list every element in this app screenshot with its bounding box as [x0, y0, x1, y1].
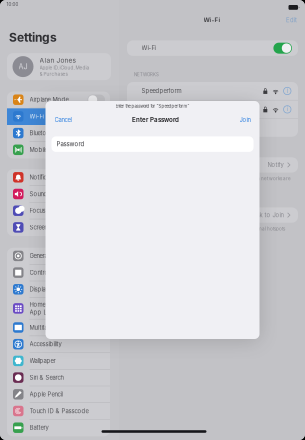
staticText: Touch ID & Passcode	[29, 407, 88, 415]
button[interactable]: Touch ID & Passcode	[7, 403, 110, 420]
staticText: Notify	[267, 161, 283, 168]
staticText: Cancel	[54, 116, 71, 123]
button[interactable]: Wallpaper	[7, 353, 110, 369]
button[interactable]: Apple Pencil	[7, 386, 110, 403]
staticText: Airplane Mode	[29, 96, 68, 103]
staticText: Sounds	[29, 190, 50, 198]
staticText: Notifications	[29, 174, 62, 181]
staticText: Enter the password for “Speedperform”	[115, 104, 189, 109]
staticText: Multitasking	[29, 324, 61, 331]
staticText: NETWORKS	[134, 72, 159, 77]
staticText: Focus	[29, 207, 45, 214]
staticText: Screen Time	[29, 224, 62, 231]
button[interactable]: Airplane Mode	[7, 92, 110, 108]
button[interactable]: Notifications	[7, 169, 110, 186]
staticText: Control Centre	[29, 269, 68, 276]
button[interactable]: Speedperform	[127, 82, 298, 100]
staticText: i	[287, 106, 288, 113]
button[interactable]: Cancel	[52, 113, 73, 126]
staticText: Known networks will be joined automatica…	[134, 176, 291, 187]
staticText: Allow this device to automatically disco…	[134, 226, 285, 237]
staticText: Siri & Search	[29, 374, 63, 381]
staticText: Alan Jones	[39, 56, 75, 64]
staticText: Mobile Data	[29, 146, 61, 153]
button[interactable]: Display & Brightness	[7, 281, 110, 298]
button[interactable]: Hotspot-5G	[127, 100, 298, 118]
staticText: Battery	[29, 424, 48, 431]
staticText: Accessibility	[29, 341, 61, 348]
staticText: i	[287, 88, 288, 94]
button[interactable]: Wi-Fi	[7, 108, 110, 125]
button[interactable]: Password	[51, 136, 253, 152]
button[interactable]: Siri & Search	[7, 369, 110, 386]
staticText: Speedperform	[141, 87, 181, 94]
button[interactable]: Battery	[7, 420, 110, 436]
button[interactable]: Ask to Join Networks	[127, 157, 298, 172]
staticText: Apple Pencil	[29, 391, 62, 398]
button[interactable]: Sounds	[7, 186, 110, 203]
staticText: Settings	[9, 30, 57, 45]
button[interactable]: Focus	[7, 203, 110, 219]
button[interactable]: Control Centre	[7, 264, 110, 281]
button[interactable]: Wi-Fi	[273, 43, 292, 54]
staticText: Wallpaper	[29, 357, 55, 364]
staticText: 10:00	[6, 2, 18, 7]
staticText: Edit	[286, 17, 297, 24]
staticText: Home Screen &	[29, 301, 71, 308]
staticText: Hotspot-5G	[141, 106, 175, 113]
staticText: App Library	[29, 309, 61, 316]
staticText: Wi-Fi	[29, 113, 43, 120]
staticText: Bluetooth	[29, 130, 55, 137]
button[interactable]: Edit	[283, 14, 300, 27]
button[interactable]: Multitasking	[7, 319, 110, 336]
button[interactable]: Mobile Data	[7, 142, 110, 158]
button[interactable]: Bluetooth	[7, 125, 110, 142]
staticText: Enter Password	[132, 116, 179, 123]
staticText: Wi-Fi	[203, 16, 220, 24]
button[interactable]: AJ	[7, 53, 111, 80]
button[interactable]: General	[7, 248, 110, 264]
button[interactable]: Other…	[127, 119, 298, 137]
staticText: Ask to Join	[252, 211, 283, 219]
staticText: & Purchases	[39, 71, 67, 77]
staticText: Join	[239, 116, 250, 123]
button[interactable]: Auto-Join Hotspot	[127, 207, 298, 223]
staticText: General	[29, 252, 48, 259]
staticText: Password	[56, 140, 84, 148]
button[interactable]: Accessibility	[7, 336, 110, 353]
button[interactable]: Home Screen &	[7, 298, 110, 319]
staticText: Wi-Fi	[141, 45, 155, 52]
button[interactable]: Screen Time	[7, 219, 110, 236]
staticText: Display & Brightness	[29, 286, 84, 293]
button[interactable]: Join	[237, 113, 252, 126]
staticText: AJ	[18, 62, 27, 71]
staticText: Apple ID, iCloud, Media	[39, 65, 89, 70]
